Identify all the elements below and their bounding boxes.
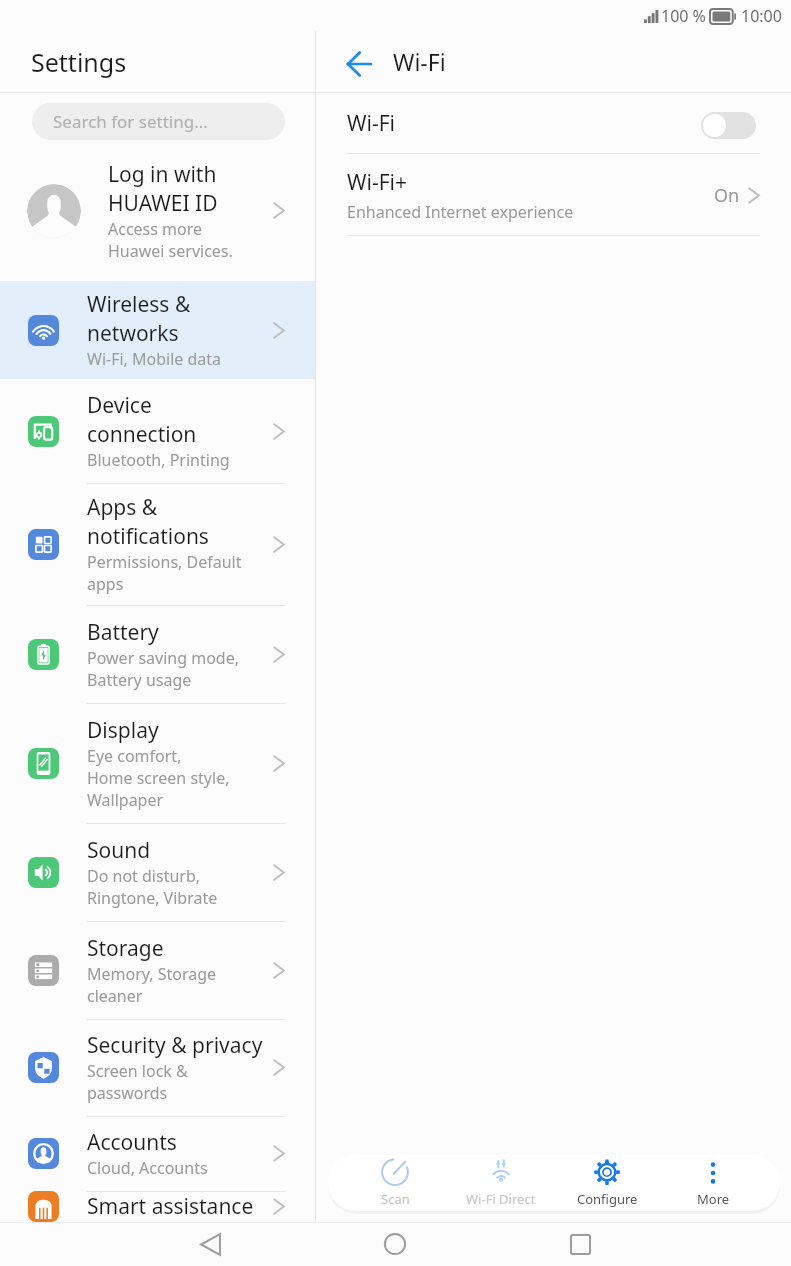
button[interactable]: Wi-Fi — [316, 93, 791, 154]
staticText: Configure — [577, 1190, 638, 1208]
staticText: Power saving mode, — [87, 647, 239, 669]
button[interactable]: Wireless & — [0, 281, 315, 379]
staticText: Smart assistance — [87, 1192, 254, 1221]
button[interactable]: Search for setting... — [32, 103, 285, 140]
button[interactable]: Apps & — [0, 483, 315, 605]
staticText: Battery — [87, 618, 159, 647]
button[interactable]: Back — [347, 50, 371, 74]
staticText: Wi-Fi — [347, 109, 701, 138]
staticText: Log in with — [108, 160, 217, 189]
button[interactable]: Recent apps — [556, 1222, 604, 1266]
staticText: Eye comfort, — [87, 745, 182, 767]
button[interactable]: Accounts — [0, 1116, 315, 1191]
staticText: Home screen style, — [87, 767, 230, 789]
staticText: 100 % — [661, 5, 706, 27]
button[interactable]: Smart assistance — [0, 1191, 315, 1222]
staticText: Wi-Fi Direct — [466, 1190, 536, 1208]
staticText: Screen lock & — [87, 1060, 188, 1082]
button[interactable]: Battery — [0, 605, 315, 703]
button[interactable]: Sound — [0, 823, 315, 921]
staticText: Wi-Fi+ — [347, 168, 408, 197]
staticText: Enhanced Internet experience — [347, 201, 574, 223]
button[interactable]: Device — [0, 379, 315, 483]
staticText: notifications — [87, 522, 209, 551]
button[interactable]: Home — [371, 1222, 419, 1266]
staticText: 10:00 — [741, 5, 782, 27]
staticText: cleaner — [87, 985, 143, 1007]
button[interactable]: More — [660, 1155, 766, 1211]
staticText: Wi-Fi — [393, 46, 446, 77]
staticText: Permissions, Default — [87, 551, 242, 573]
staticText: Cloud, Accounts — [87, 1157, 208, 1179]
staticText: Bluetooth, Printing — [87, 449, 230, 471]
staticText: Search for setting... — [53, 110, 208, 133]
button[interactable]: Display — [0, 703, 315, 823]
staticText: Wallpaper — [87, 789, 164, 811]
staticText: Device — [87, 391, 152, 420]
staticText: networks — [87, 319, 179, 348]
staticText: Storage — [87, 934, 164, 963]
staticText: Access more — [108, 218, 203, 240]
staticText: More — [697, 1190, 730, 1208]
staticText: Huawei services. — [108, 240, 233, 262]
button[interactable]: Configure — [554, 1155, 660, 1211]
button[interactable]: Wi-Fi Direct — [448, 1155, 554, 1211]
staticText: Scan — [381, 1190, 410, 1208]
button[interactable]: Storage — [0, 921, 315, 1019]
button[interactable]: Log in with — [0, 140, 315, 281]
staticText: HUAWEI ID — [108, 189, 218, 218]
staticText: apps — [87, 573, 124, 595]
button[interactable]: Wi-Fi+ — [316, 154, 791, 236]
staticText: Ringtone, Vibrate — [87, 887, 218, 909]
staticText: On — [714, 183, 740, 208]
button[interactable]: Back — [186, 1222, 234, 1266]
staticText: Wireless & — [87, 290, 191, 319]
staticText: Wi-Fi, Mobile data — [87, 348, 222, 370]
button[interactable]: Scan — [342, 1155, 448, 1211]
staticText: connection — [87, 420, 197, 449]
staticText: Accounts — [87, 1128, 177, 1157]
staticText: Sound — [87, 836, 151, 865]
staticText: Settings — [31, 45, 127, 79]
staticText: Display — [87, 716, 159, 745]
staticText: passwords — [87, 1082, 168, 1104]
staticText: Security & privacy — [87, 1031, 263, 1060]
staticText: Apps & — [87, 493, 158, 522]
button[interactable]: Security & privacy — [0, 1019, 315, 1116]
staticText: Memory, Storage — [87, 963, 217, 985]
staticText: Battery usage — [87, 669, 192, 691]
staticText: Do not disturb, — [87, 865, 201, 887]
